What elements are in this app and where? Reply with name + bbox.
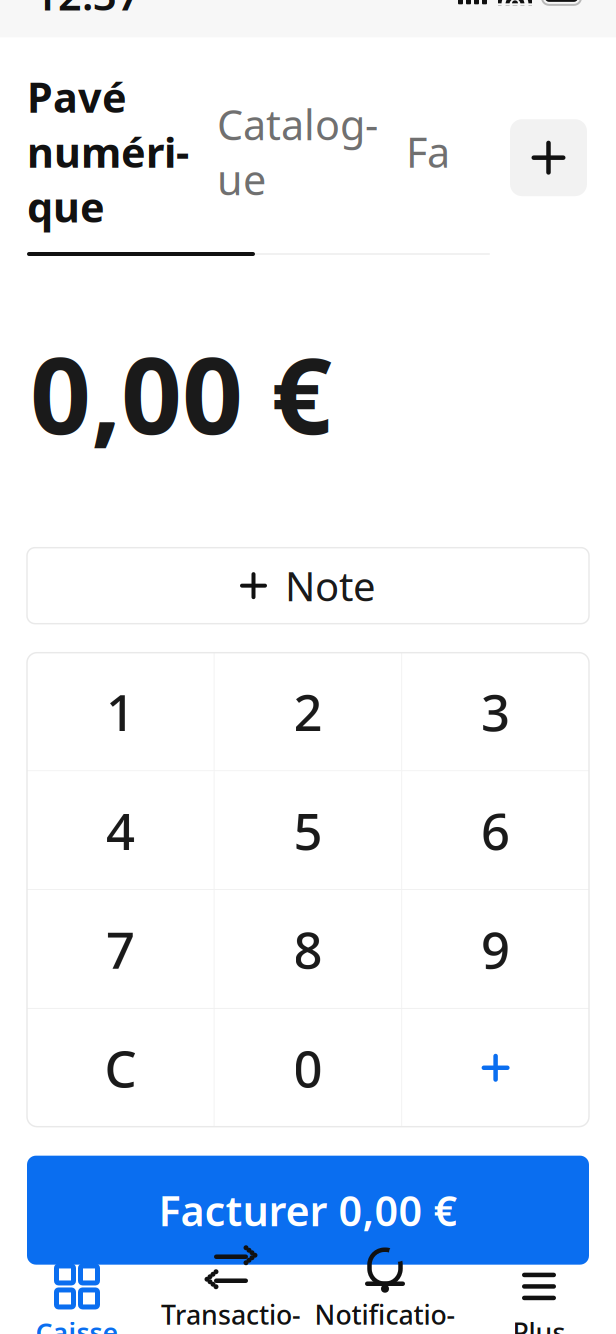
button[interactable]: Notifications	[308, 1265, 462, 1334]
button[interactable]: 9	[402, 890, 589, 1008]
button[interactable]: Caisse	[0, 1265, 154, 1334]
button[interactable]: Pavé numérique	[27, 69, 189, 234]
staticText: 12:37	[34, 0, 141, 22]
staticText: 1	[106, 678, 135, 745]
button[interactable]: Fa	[406, 124, 450, 179]
staticText: 0,00 €	[30, 322, 332, 464]
button[interactable]: C	[27, 1009, 214, 1127]
button[interactable]: 4	[27, 771, 214, 889]
button[interactable]: Ajouter un onglet	[510, 119, 587, 196]
button[interactable]: Note	[27, 548, 589, 624]
staticText: 7	[106, 915, 135, 983]
button[interactable]: Catalogue	[217, 97, 378, 207]
staticText: Notifications	[314, 1297, 455, 1334]
button[interactable]: 7	[27, 890, 214, 1008]
button[interactable]: 0	[215, 1009, 401, 1127]
button[interactable]: 1	[27, 653, 214, 770]
staticText: 4	[106, 797, 135, 864]
staticText: 0	[293, 1034, 322, 1101]
staticText: Note	[285, 559, 376, 612]
button[interactable]: 6	[402, 771, 589, 889]
staticText: 3	[481, 678, 510, 745]
button[interactable]: 5	[215, 771, 401, 889]
button[interactable]: Transactions	[154, 1265, 308, 1334]
staticText: Pavé numérique	[27, 69, 189, 234]
button[interactable]: 2	[215, 653, 401, 770]
button[interactable]: 3	[402, 653, 589, 770]
staticText: Transactions	[161, 1297, 301, 1334]
button[interactable]: Facturer 0,00 €	[27, 1156, 589, 1265]
staticText: 6	[481, 797, 510, 864]
button[interactable]: Ajouter un article	[402, 1009, 589, 1127]
staticText: C	[104, 1034, 136, 1101]
staticText: Facturer 0,00 €	[158, 1183, 457, 1238]
staticText: Catalogue	[217, 97, 378, 207]
staticText: 9	[481, 915, 510, 983]
staticText: 5	[293, 797, 322, 864]
staticText: Caisse	[35, 1314, 118, 1334]
staticText: Fa	[406, 124, 450, 179]
button[interactable]: Plus	[462, 1265, 616, 1334]
staticText: 8	[293, 915, 322, 983]
staticText: 2	[293, 678, 322, 745]
button[interactable]: 8	[215, 890, 401, 1008]
staticText: Plus	[512, 1314, 565, 1334]
